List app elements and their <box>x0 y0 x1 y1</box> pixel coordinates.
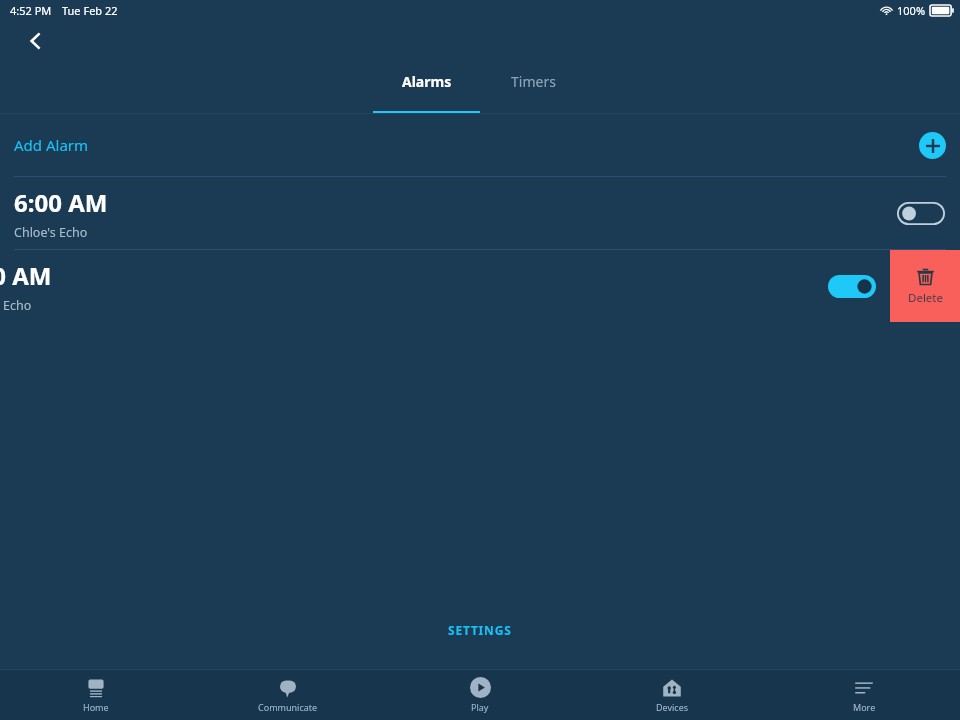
staticText: 7:00 AM <box>0 259 52 292</box>
staticText: Play <box>471 701 489 713</box>
button[interactable]: Back <box>18 23 54 59</box>
button[interactable]: Delete <box>890 250 960 322</box>
button[interactable]: More <box>768 670 960 720</box>
staticText: Chloe's Echo <box>14 224 88 241</box>
staticText: Tue Feb 22 <box>62 3 118 18</box>
staticText: Alarms <box>402 72 452 91</box>
staticText: Timers <box>511 72 556 91</box>
staticText: 4:52 PM <box>10 3 52 18</box>
button[interactable]: Play <box>384 670 576 720</box>
staticText: 100% <box>897 3 926 18</box>
staticText: Devices <box>656 701 689 713</box>
staticText: Add Alarm <box>14 135 89 155</box>
button[interactable]: Alarm off <box>897 202 945 225</box>
button[interactable]: 7:00 AM <box>0 250 960 322</box>
button[interactable]: Home <box>0 670 192 720</box>
staticText: Communicate <box>258 701 318 713</box>
button[interactable]: Alarm on <box>828 275 876 298</box>
staticText: Chloe's Echo <box>0 297 32 314</box>
staticText: Delete <box>908 290 943 306</box>
button[interactable]: Timers <box>480 62 587 114</box>
staticText: 6:00 AM <box>14 186 108 219</box>
staticText: SETTINGS <box>448 622 512 638</box>
button[interactable]: Devices <box>576 670 768 720</box>
button[interactable]: Communicate <box>192 670 384 720</box>
staticText: Home <box>83 701 109 713</box>
button[interactable]: Add alarm <box>919 132 946 159</box>
button[interactable]: SETTINGS <box>434 616 526 644</box>
button[interactable]: Add Alarm <box>0 114 960 176</box>
button[interactable]: 6:00 AM <box>0 177 960 249</box>
button[interactable]: Alarms <box>373 62 480 114</box>
staticText: More <box>853 701 876 713</box>
